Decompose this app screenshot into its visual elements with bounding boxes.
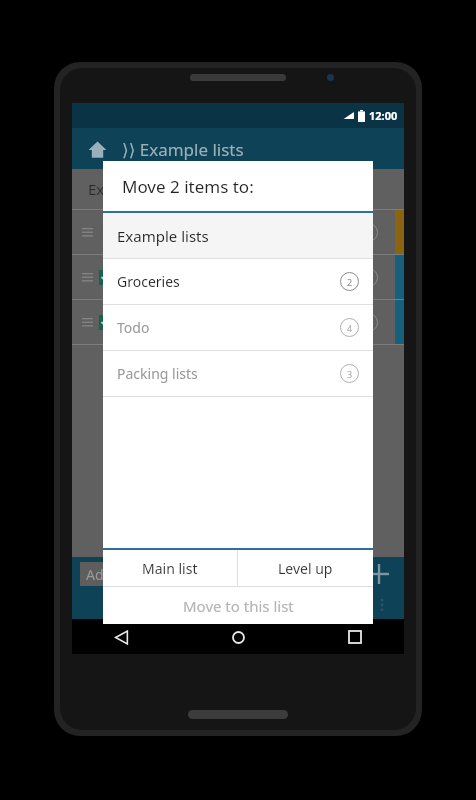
button[interactable] <box>72 255 404 300</box>
button[interactable]: Main list <box>103 550 237 586</box>
staticText: Example lists <box>117 226 209 246</box>
button[interactable]: Level up <box>238 550 373 586</box>
staticText: Groceries <box>117 272 180 291</box>
staticText: ⟩⟩ Example lists <box>122 138 244 161</box>
button[interactable]: Recents <box>340 622 370 652</box>
staticText: Todo <box>117 318 150 337</box>
button[interactable]: Home <box>82 134 112 164</box>
staticText: Example lists <box>88 179 180 199</box>
staticText: 3 <box>347 368 353 380</box>
staticText: 2 <box>347 276 353 288</box>
button[interactable]: Move <box>220 591 256 619</box>
button[interactable] <box>72 300 404 345</box>
button[interactable]: Groceries <box>103 259 373 304</box>
button[interactable]: Select all <box>184 591 220 619</box>
button[interactable]: Todo <box>103 305 373 350</box>
button[interactable]: Move to this list <box>103 587 373 624</box>
button[interactable]: More options <box>364 591 400 619</box>
button[interactable]: Add <box>366 561 392 587</box>
staticText: Level up <box>278 559 333 578</box>
staticText: 12:00 <box>369 108 398 123</box>
staticText: Main list <box>142 559 198 578</box>
button[interactable]: Example lists <box>103 213 373 258</box>
staticText: Packing lists <box>117 364 198 383</box>
button[interactable]: Share <box>292 591 328 619</box>
button[interactable]: Packing lists <box>103 351 373 396</box>
staticText: Move 2 items to: <box>122 175 254 198</box>
button[interactable]: Delete <box>256 591 292 619</box>
button[interactable] <box>72 210 404 255</box>
staticText: 4 <box>347 322 353 334</box>
staticText: Add <box>86 565 113 584</box>
button[interactable]: Add <box>80 562 330 586</box>
staticText: Move to this list <box>183 596 294 616</box>
button[interactable]: Back <box>106 622 136 652</box>
button[interactable]: Home <box>223 622 253 652</box>
